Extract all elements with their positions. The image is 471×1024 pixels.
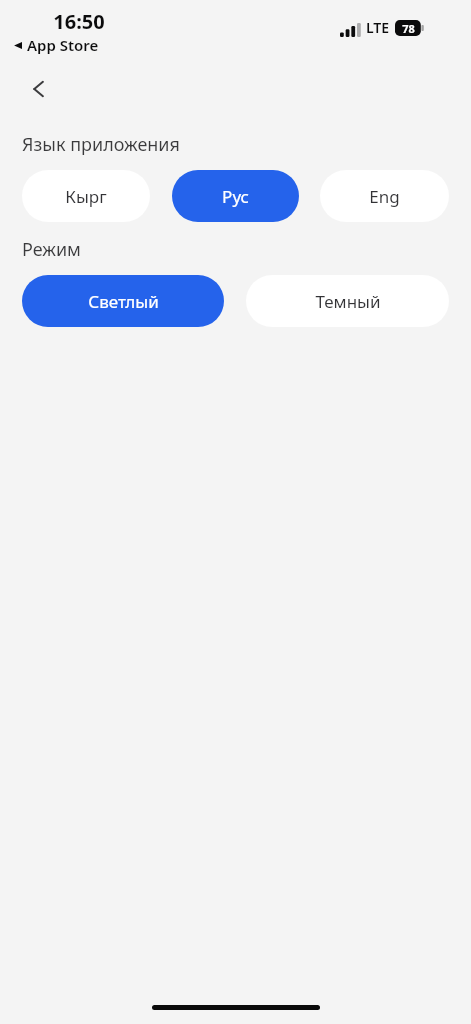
staticText: Рус <box>222 185 249 208</box>
staticText: Кырг <box>65 185 107 208</box>
staticText: LTE <box>366 18 390 37</box>
staticText: Светлый <box>88 290 159 313</box>
button[interactable]: Back <box>20 68 62 110</box>
staticText: Темный <box>315 290 381 313</box>
staticText: 16:50 <box>53 8 105 35</box>
staticText: Eng <box>369 185 400 208</box>
staticText: Режим <box>22 237 81 262</box>
button[interactable]: Кырг <box>22 170 150 222</box>
staticText: 78 <box>402 21 415 36</box>
staticText: App Store <box>27 35 99 55</box>
button[interactable]: Eng <box>320 170 449 222</box>
staticText: Язык приложения <box>22 132 180 157</box>
button[interactable]: Рус <box>172 170 299 222</box>
button[interactable]: Темный <box>246 275 449 327</box>
button[interactable]: Светлый <box>22 275 224 327</box>
